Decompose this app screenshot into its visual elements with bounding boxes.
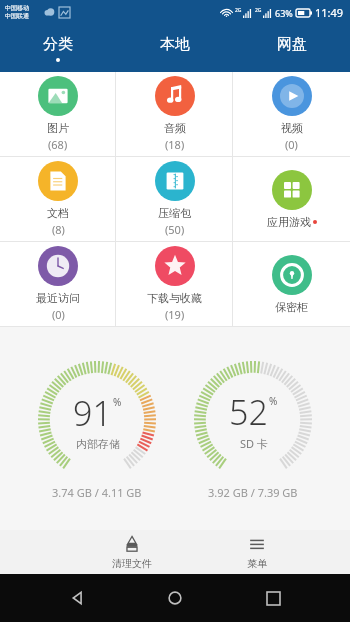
staticText: 视频 (281, 121, 303, 135)
staticText: 中国移动 (5, 4, 29, 12)
button[interactable]: 最近访问 (0, 242, 116, 326)
button[interactable]: 视频 (233, 72, 350, 156)
staticText: 3.74 GB / 4.11 GB (52, 485, 142, 500)
button[interactable]: 网盘 (233, 24, 350, 72)
button[interactable]: 图片 (0, 72, 116, 156)
staticText: % (113, 395, 122, 409)
button[interactable]: 应用游戏 (233, 157, 350, 241)
staticText: 文档 (47, 206, 69, 220)
staticText: (68) (48, 137, 68, 152)
staticText: SD 卡 (240, 436, 268, 451)
button[interactable]: 菜单 (194, 530, 319, 574)
staticText: (19) (165, 307, 185, 322)
staticText: 内部存储 (76, 437, 120, 451)
staticText: (50) (165, 222, 185, 237)
staticText: (0) (285, 137, 298, 152)
button[interactable]: 清理文件 (69, 530, 194, 574)
button[interactable]: 保密柜 (233, 242, 350, 326)
button[interactable]: Recents (253, 578, 293, 618)
staticText: 91 (73, 390, 112, 436)
staticText: 压缩包 (158, 206, 191, 220)
staticText: 63% (275, 7, 293, 19)
button[interactable]: 文档 (0, 157, 116, 241)
staticText: 2G (235, 7, 242, 14)
staticText: 图片 (47, 121, 69, 135)
staticText: (8) (52, 222, 65, 237)
staticText: (18) (165, 137, 185, 152)
staticText: % (269, 394, 278, 408)
button[interactable]: 压缩包 (116, 157, 233, 241)
staticText: 清理文件 (112, 557, 152, 570)
button[interactable]: Back (58, 578, 98, 618)
staticText: 2G (255, 7, 262, 14)
button[interactable]: 音频 (116, 72, 233, 156)
staticText: 11:49 (315, 5, 344, 20)
button[interactable]: 下载与收藏 (116, 242, 233, 326)
staticText: 应用游戏 (267, 215, 311, 229)
staticText: 下载与收藏 (147, 291, 202, 305)
staticText: 中国联通 (5, 12, 29, 20)
staticText: 网盘 (277, 35, 307, 54)
staticText: 音频 (164, 121, 186, 135)
staticText: 分类 (43, 35, 73, 54)
staticText: (0) (52, 307, 65, 322)
button[interactable]: Home (155, 578, 195, 618)
staticText: 最近访问 (36, 291, 80, 305)
staticText: 菜单 (247, 557, 267, 570)
button[interactable]: 本地 (116, 24, 233, 72)
staticText: 3.92 GB / 7.39 GB (208, 485, 298, 500)
staticText: 52 (229, 389, 268, 435)
button[interactable]: 分类 (0, 24, 116, 72)
staticText: 保密柜 (275, 300, 308, 314)
staticText: 本地 (160, 35, 190, 54)
